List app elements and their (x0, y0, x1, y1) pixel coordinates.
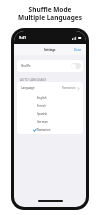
button[interactable]: English (17, 94, 83, 102)
button[interactable]: Shuffle toggle (71, 63, 81, 69)
staticText: Romanian (37, 128, 51, 132)
button[interactable]: Done (74, 48, 82, 52)
staticText: Shuffle (21, 64, 31, 68)
staticText: German (37, 120, 48, 124)
staticText: Romanian (62, 86, 76, 90)
staticText: AUTO LANGUAGE (20, 78, 47, 82)
button[interactable]: Language (17, 82, 83, 94)
button[interactable]: German (17, 118, 83, 126)
staticText: Language (21, 86, 35, 90)
staticText: English (37, 96, 47, 100)
button[interactable]: Shuffle (17, 60, 83, 72)
staticText: 9:41 (19, 35, 27, 40)
staticText: Settings (44, 48, 56, 52)
button[interactable]: Spanish (17, 110, 83, 118)
staticText: Shuffle Mode Multiple Languages (18, 5, 82, 22)
staticText: Spanish (37, 112, 48, 116)
button[interactable]: Romanian (17, 126, 83, 134)
staticText: French (37, 104, 46, 108)
button[interactable]: French (17, 102, 83, 110)
